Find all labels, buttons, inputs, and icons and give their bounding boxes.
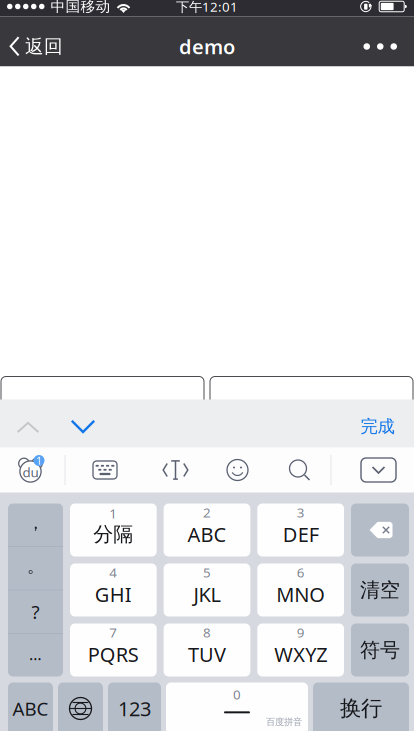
staticText: PQRS (88, 641, 139, 668)
button[interactable]: 3 (257, 503, 344, 556)
staticText: demo (179, 33, 235, 60)
staticText: 6 (297, 563, 305, 581)
staticText: 分隔 (93, 522, 133, 547)
staticText: TUV (188, 641, 226, 668)
button[interactable]: Hide keyboard (339, 447, 414, 492)
button[interactable]: More (347, 16, 414, 66)
button[interactable]: Baidu input settings (0, 447, 64, 492)
button[interactable]: Delete (351, 503, 409, 556)
button[interactable]: 。 (8, 547, 63, 590)
button[interactable]: Keyboard layout (65, 447, 144, 492)
staticText: WXYZ (274, 641, 327, 668)
button[interactable]: 8 (164, 623, 250, 676)
staticText: 百度拼音 (266, 716, 302, 727)
staticText: 9 (297, 623, 305, 641)
button[interactable]: 4 (70, 563, 157, 616)
button[interactable]: … (8, 634, 63, 676)
button[interactable]: Previous field (0, 399, 56, 447)
button[interactable]: 换行 (313, 682, 409, 731)
staticText: 1 (109, 504, 117, 522)
button[interactable]: 1 (70, 503, 157, 556)
button[interactable]: ? (8, 590, 63, 633)
staticText: 1 (36, 453, 42, 468)
button[interactable]: Next field (56, 399, 110, 447)
staticText: 下午12:01 (176, 0, 238, 15)
staticText: ? (31, 599, 39, 624)
staticText: 123 (118, 695, 151, 722)
button[interactable]: 6 (257, 563, 344, 616)
staticText: 0 (233, 685, 241, 703)
staticText: JKL (193, 581, 220, 608)
staticText: DEF (283, 521, 319, 548)
button[interactable]: Move cursor (144, 447, 206, 492)
button[interactable]: 5 (164, 563, 250, 616)
button[interactable]: 123 (108, 682, 161, 731)
staticText: … (29, 643, 42, 665)
staticText: 3 (297, 503, 305, 521)
button[interactable]: Space (166, 682, 308, 731)
button[interactable]: Switch keyboard (58, 682, 103, 731)
button[interactable]: 符号 (351, 623, 409, 676)
staticText: 8 (203, 623, 211, 641)
button[interactable]: 2 (164, 503, 250, 556)
staticText: 。 (27, 556, 44, 577)
staticText: GHI (95, 581, 132, 608)
staticText: 完成 (360, 416, 394, 437)
button[interactable]: ABC (8, 682, 53, 731)
staticText: 4 (109, 563, 117, 581)
staticText: 7 (109, 623, 117, 641)
staticText: ABC (12, 696, 48, 721)
button[interactable]: ， (8, 503, 63, 546)
staticText: 返回 (25, 35, 63, 58)
staticText: du (22, 463, 38, 481)
staticText: MNO (276, 581, 325, 608)
staticText: 清空 (360, 578, 400, 602)
staticText: 中国移动 (50, 0, 110, 15)
staticText: 2 (203, 503, 211, 521)
button[interactable]: Emoji (206, 447, 268, 492)
staticText: 换行 (340, 695, 382, 722)
button[interactable]: 9 (257, 623, 344, 676)
button[interactable]: 完成 (341, 399, 414, 447)
button[interactable]: 返回 (0, 16, 73, 66)
staticText: 5 (203, 563, 211, 581)
button[interactable]: 7 (70, 623, 157, 676)
staticText: 符号 (360, 638, 400, 662)
staticText: ABC (187, 521, 226, 548)
staticText: ， (27, 512, 44, 533)
button[interactable]: 清空 (351, 563, 409, 616)
button[interactable]: Search (268, 447, 330, 492)
